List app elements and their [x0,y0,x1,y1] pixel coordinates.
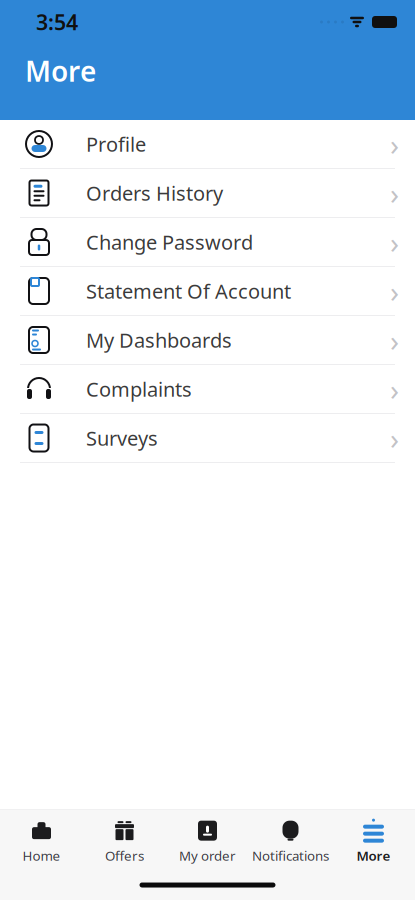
staticText: 3:54 [36,8,78,36]
button[interactable]: Change Password [0,218,415,267]
staticText: Orders History [86,180,223,206]
staticText: Notifications [252,847,329,864]
staticText: My order [179,847,236,864]
staticText: Surveys [86,425,158,451]
staticText: › [390,418,399,457]
button[interactable]: Home [0,818,83,866]
button[interactable]: Statement Of Account [0,267,415,316]
staticText: Change Password [86,229,253,255]
staticText: Statement Of Account [86,278,291,304]
button[interactable]: Surveys [0,414,415,463]
button[interactable]: Profile [0,120,415,169]
staticText: › [390,271,399,310]
button[interactable]: Offers [83,818,166,866]
staticText: More [356,847,390,864]
button[interactable]: My Dashboards [0,316,415,365]
button[interactable]: More [332,818,415,866]
staticText: › [390,369,399,408]
button[interactable]: Orders History [0,169,415,218]
staticText: More [25,52,96,90]
button[interactable]: My order [166,818,249,866]
button[interactable]: Complaints [0,365,415,414]
staticText: Profile [86,131,146,157]
button[interactable]: Notifications [249,818,332,866]
staticText: › [390,222,399,261]
staticText: › [390,124,399,163]
staticText: › [390,320,399,359]
staticText: Offers [105,847,144,864]
staticText: Complaints [86,376,192,402]
staticText: My Dashboards [86,327,232,353]
staticText: › [390,173,399,212]
staticText: Home [22,847,60,864]
